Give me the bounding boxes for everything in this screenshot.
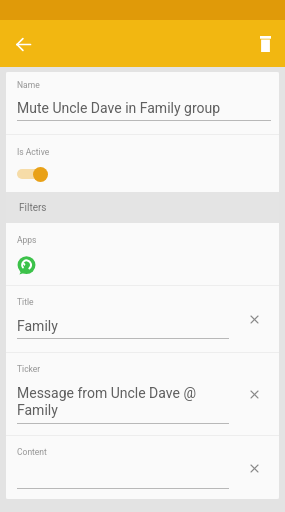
staticText: Mute Uncle Dave in Family group: [17, 100, 221, 116]
button[interactable]: Delete: [247, 26, 283, 62]
button[interactable]: Clear: [241, 306, 267, 332]
button[interactable]: Ticker: [6, 353, 279, 435]
staticText: Apps: [17, 235, 37, 245]
staticText: Ticker: [17, 364, 41, 374]
staticText: Title: [17, 297, 34, 307]
button[interactable]: Clear: [241, 381, 267, 407]
button[interactable]: Is Active: [6, 135, 279, 192]
button[interactable]: Clear: [241, 455, 267, 481]
button[interactable]: Back: [3, 24, 43, 64]
staticText: Name: [17, 80, 40, 90]
button[interactable]: Content: [6, 436, 279, 499]
staticText: Is Active: [17, 147, 50, 157]
staticText: Filters: [19, 202, 47, 214]
staticText: Family: [17, 318, 58, 334]
staticText: Content: [17, 447, 47, 457]
button[interactable]: Apps: [6, 223, 279, 285]
staticText: Message from Uncle Dave @ Family: [17, 385, 229, 419]
button[interactable]: Title: [6, 286, 279, 352]
button[interactable]: Name: [6, 72, 279, 134]
